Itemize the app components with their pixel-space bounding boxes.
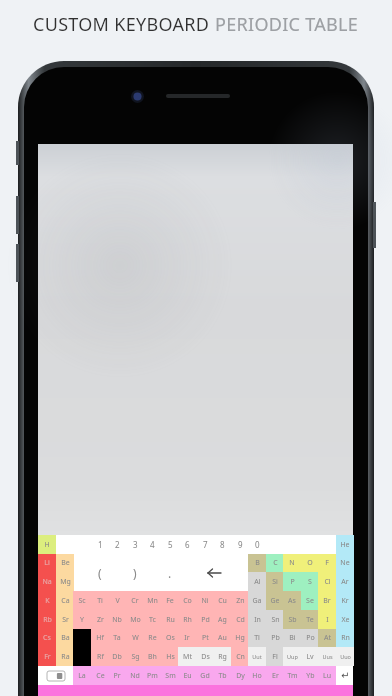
button[interactable]: )	[126, 554, 144, 591]
button[interactable]: Zr	[91, 610, 109, 629]
button[interactable]: I	[318, 610, 336, 629]
button[interactable]: Ca	[56, 591, 74, 610]
button[interactable]: Cu	[213, 591, 231, 610]
button[interactable]: Fe	[161, 591, 179, 610]
button[interactable]: Mt	[178, 647, 196, 666]
button[interactable]: Ho	[248, 666, 266, 685]
button[interactable]: F	[318, 554, 336, 572]
button[interactable]: Re	[143, 629, 161, 647]
button[interactable]: Na	[38, 572, 56, 591]
button[interactable]: Ba	[56, 629, 74, 647]
button[interactable]: Cr	[126, 591, 144, 610]
button[interactable]: Au	[213, 629, 231, 647]
button[interactable]: Ce	[91, 666, 109, 685]
button[interactable]: Cl	[318, 572, 336, 591]
button[interactable]: 0	[248, 535, 266, 554]
button[interactable]: (	[91, 554, 109, 591]
button[interactable]: Sn	[266, 610, 284, 629]
button[interactable]: Hf	[91, 629, 109, 647]
button[interactable]: Se	[301, 591, 319, 610]
button[interactable]: Os	[161, 629, 179, 647]
button[interactable]: Pr	[108, 666, 126, 685]
button[interactable]: Rh	[178, 610, 196, 629]
button[interactable]: 6	[178, 535, 196, 554]
button[interactable]: Li	[38, 554, 56, 572]
button[interactable]: Rf	[91, 647, 109, 666]
button[interactable]: H	[38, 535, 56, 554]
button[interactable]: Pb	[266, 629, 284, 647]
button[interactable]: Lu	[318, 666, 336, 685]
button[interactable]: Hg	[231, 629, 249, 647]
button[interactable]: La	[73, 666, 91, 685]
button[interactable]: 9	[231, 535, 249, 554]
button[interactable]: Ga	[248, 591, 266, 610]
button[interactable]: Te	[301, 610, 319, 629]
button[interactable]: 1	[91, 535, 109, 554]
button[interactable]: Fl	[266, 647, 284, 666]
button[interactable]: Dy	[231, 666, 249, 685]
button[interactable]: Lv	[301, 647, 319, 666]
button[interactable]: Al	[248, 572, 266, 591]
button[interactable]: Cd	[231, 610, 249, 629]
button[interactable]: Sm	[161, 666, 179, 685]
button[interactable]: 3	[126, 535, 144, 554]
button[interactable]: Po	[301, 629, 319, 647]
button[interactable]: Rn	[336, 629, 354, 647]
button[interactable]: Rg	[213, 647, 231, 666]
button[interactable]: Uut	[248, 647, 266, 666]
button[interactable]: Br	[318, 591, 336, 610]
button[interactable]: Cs	[38, 629, 56, 647]
button[interactable]: Ta	[108, 629, 126, 647]
button[interactable]: .	[161, 554, 179, 591]
button[interactable]: Db	[108, 647, 126, 666]
button[interactable]: Cn	[231, 647, 249, 666]
button[interactable]: As	[283, 591, 301, 610]
button[interactable]: Kr	[336, 591, 354, 610]
button[interactable]: Return	[336, 666, 354, 685]
button[interactable]: Sc	[73, 591, 91, 610]
button[interactable]: Tm	[283, 666, 301, 685]
button[interactable]: 2	[108, 535, 126, 554]
button[interactable]: Sb	[283, 610, 301, 629]
button[interactable]: Zn	[231, 591, 249, 610]
button[interactable]: Mn	[143, 591, 161, 610]
button[interactable]: Co	[178, 591, 196, 610]
button[interactable]: C	[266, 554, 284, 572]
button[interactable]: Ag	[213, 610, 231, 629]
button[interactable]: Backspace	[196, 554, 231, 591]
button[interactable]: 7	[196, 535, 214, 554]
button[interactable]: V	[108, 591, 126, 610]
button[interactable]: Ti	[91, 591, 109, 610]
button[interactable]: Nb	[108, 610, 126, 629]
button[interactable]: Xe	[336, 610, 354, 629]
button[interactable]: K	[38, 591, 56, 610]
button[interactable]: Ra	[56, 647, 74, 666]
button[interactable]: P	[283, 572, 301, 591]
button[interactable]: Ni	[196, 591, 214, 610]
button[interactable]: Pd	[196, 610, 214, 629]
button[interactable]: Mo	[126, 610, 144, 629]
button[interactable]: N	[283, 554, 301, 572]
button[interactable]: Tb	[213, 666, 231, 685]
button[interactable]: In	[248, 610, 266, 629]
button[interactable]: Pt	[196, 629, 214, 647]
button[interactable]: Sg	[126, 647, 144, 666]
button[interactable]: Tl	[248, 629, 266, 647]
button[interactable]: 5	[161, 535, 179, 554]
button[interactable]: Bi	[283, 629, 301, 647]
button[interactable]: Ru	[161, 610, 179, 629]
button[interactable]: Be	[56, 554, 74, 572]
button[interactable]: S	[301, 572, 319, 591]
button[interactable]: Pm	[143, 666, 161, 685]
button[interactable]: Tc	[143, 610, 161, 629]
button[interactable]: Sr	[56, 610, 74, 629]
button[interactable]: Ar	[336, 572, 354, 591]
button[interactable]: O	[301, 554, 319, 572]
button[interactable]: Uus	[318, 647, 336, 666]
button[interactable]: Ir	[178, 629, 196, 647]
button[interactable]: At	[318, 629, 336, 647]
button[interactable]: He	[336, 535, 354, 554]
button[interactable]: Er	[266, 666, 284, 685]
